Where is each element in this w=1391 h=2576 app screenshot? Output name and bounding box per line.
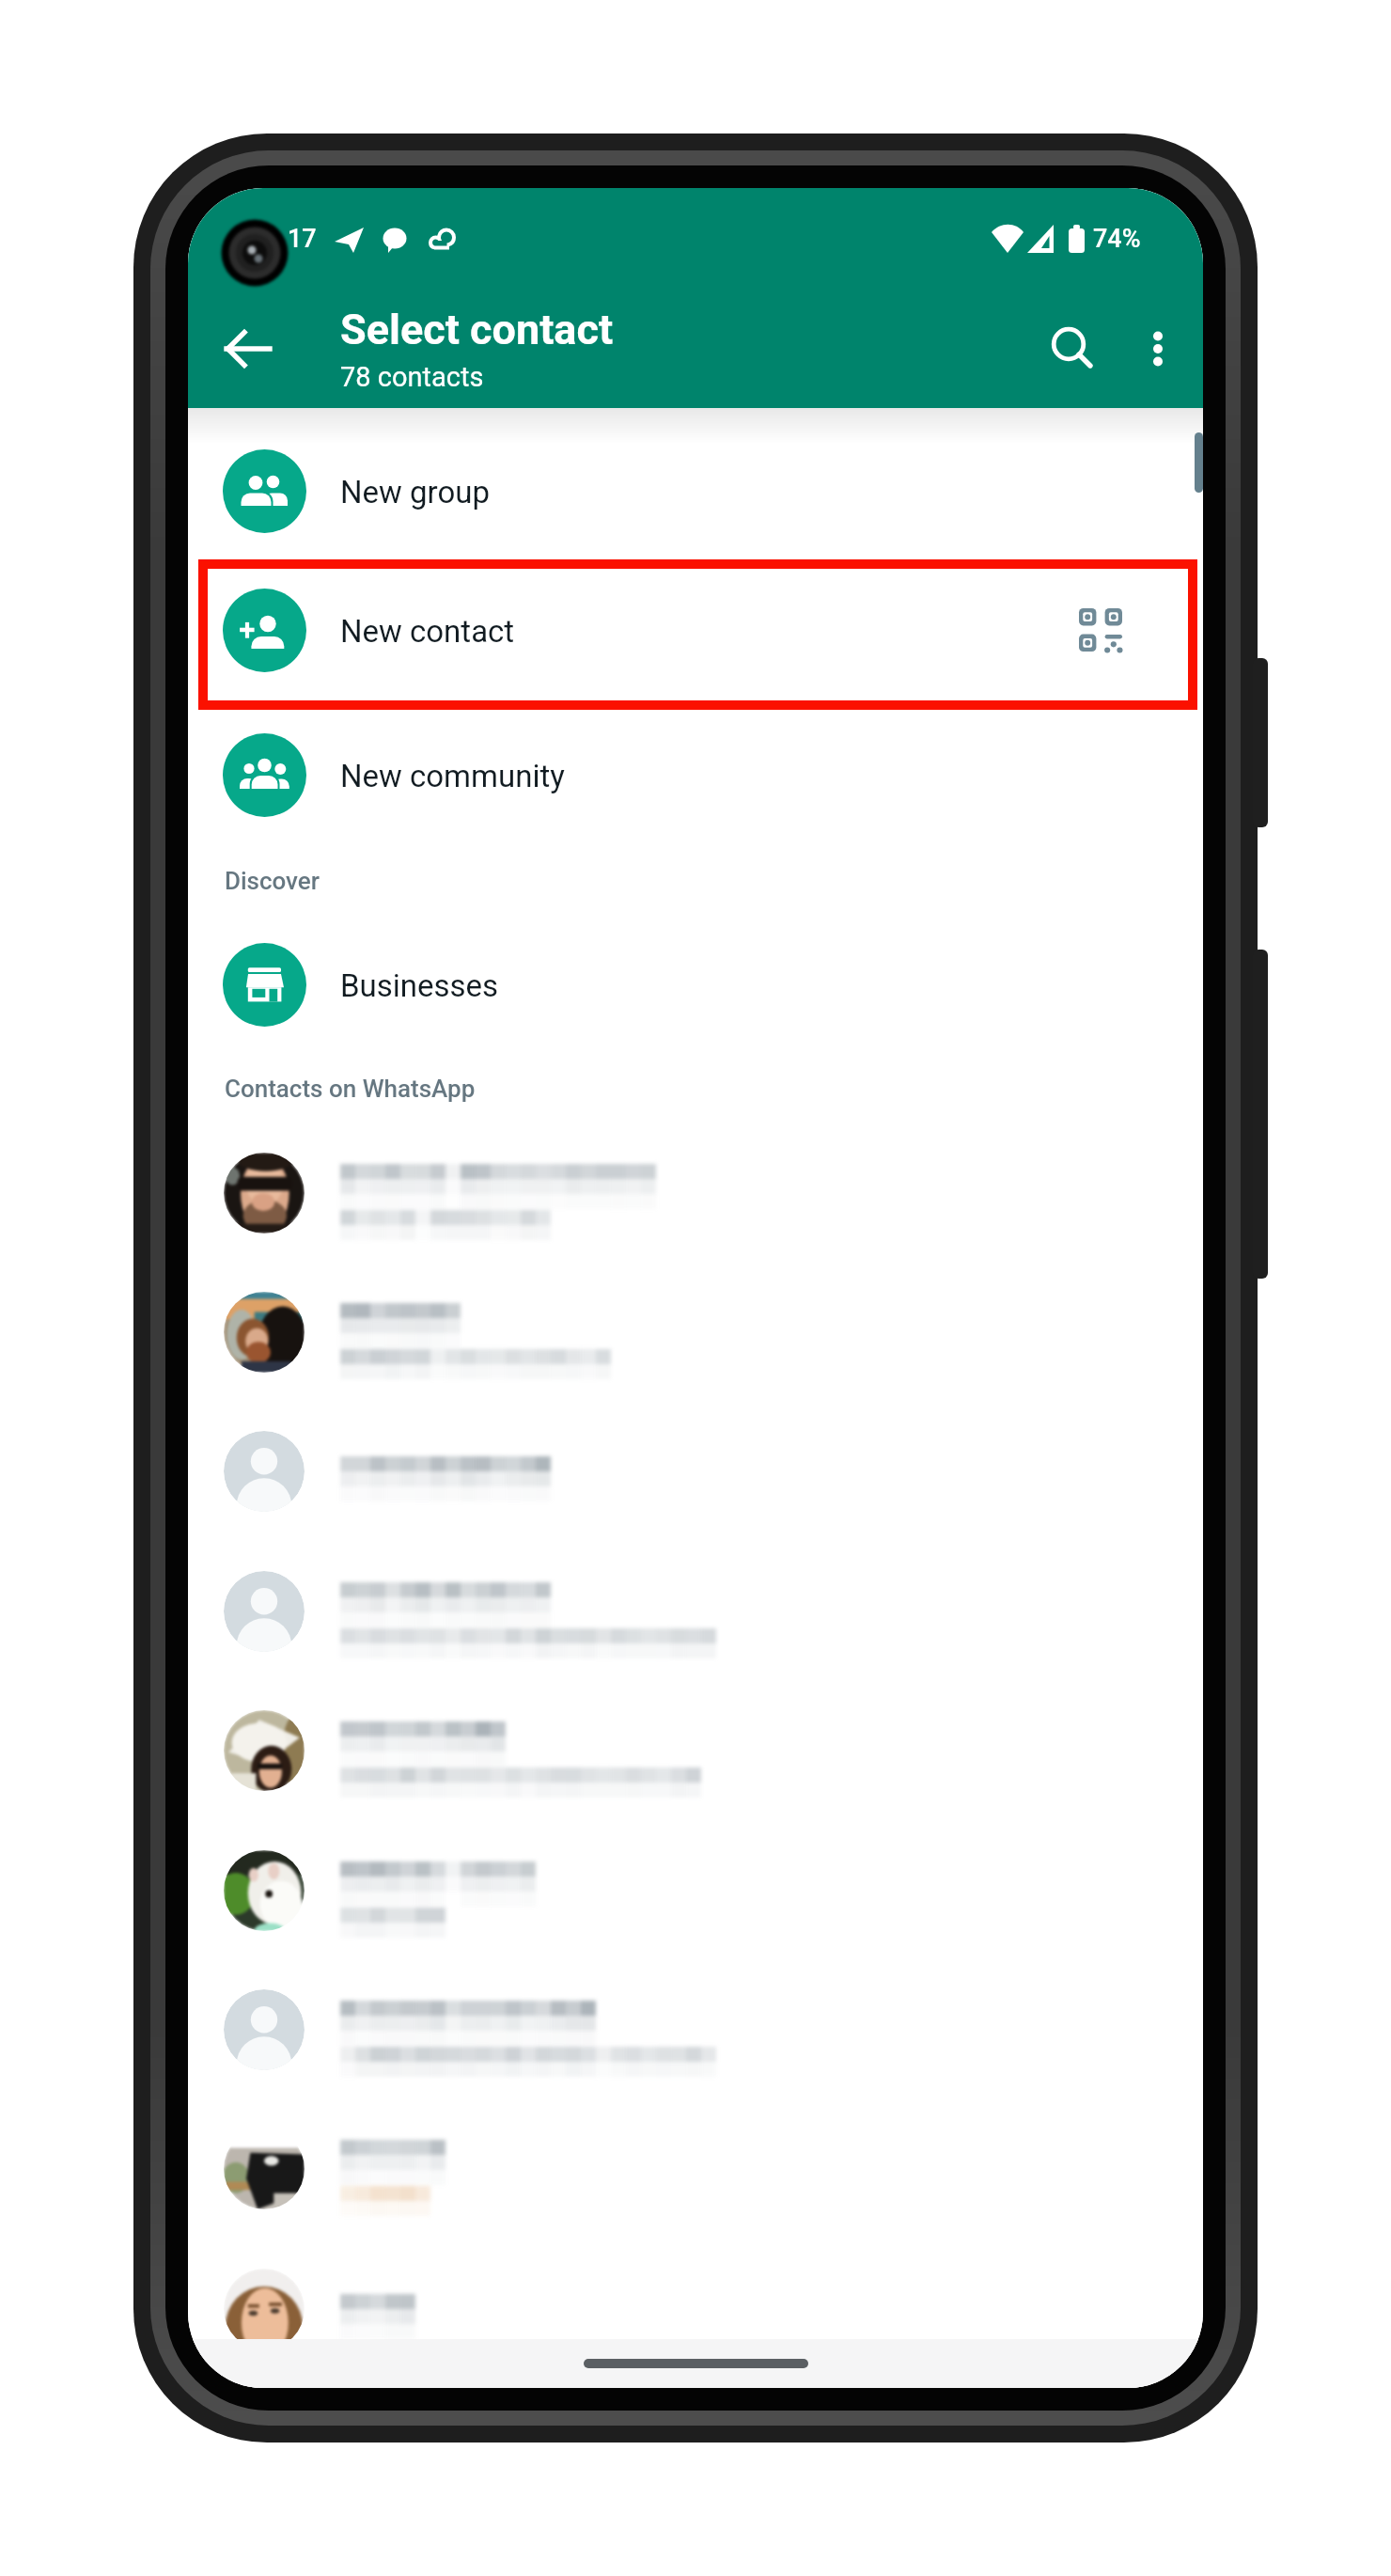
staticText: 17 (288, 224, 317, 254)
button[interactable]: New contact (188, 560, 1203, 699)
button[interactable] (188, 1263, 1203, 1402)
button[interactable]: New group (188, 421, 1203, 560)
button[interactable] (188, 1402, 1203, 1541)
staticText: 74% (1093, 224, 1141, 254)
staticText: New group (340, 474, 490, 510)
button[interactable]: Back (207, 307, 289, 390)
staticText: Businesses (340, 967, 499, 1004)
staticText: New contact (340, 613, 515, 650)
button[interactable] (188, 1960, 1203, 2099)
staticText: Select contact (340, 305, 614, 354)
staticText: Discover (225, 867, 320, 895)
button[interactable] (188, 1821, 1203, 1960)
button[interactable] (188, 1542, 1203, 1681)
staticText: New community (340, 758, 565, 794)
button[interactable]: Businesses (188, 915, 1203, 1054)
button[interactable] (188, 2239, 1203, 2379)
button[interactable]: Search (1024, 299, 1114, 389)
button[interactable] (188, 1681, 1203, 1820)
button[interactable]: Scan QR code (1061, 590, 1140, 669)
button[interactable] (188, 1123, 1203, 1263)
button[interactable] (188, 2099, 1203, 2238)
button[interactable]: New community (188, 705, 1203, 844)
staticText: 78 contacts (340, 361, 484, 393)
button[interactable]: More options (1115, 306, 1201, 392)
staticText: Contacts on WhatsApp (225, 1075, 476, 1103)
